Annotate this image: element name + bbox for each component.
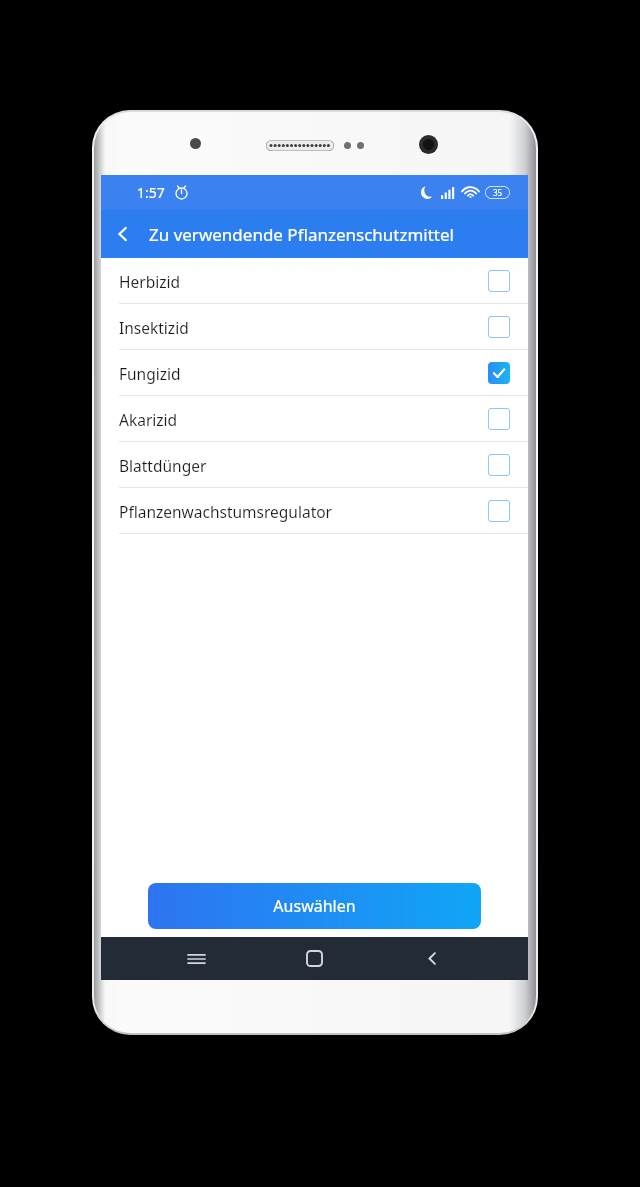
button[interactable]: Herbizid xyxy=(101,258,528,304)
button[interactable]: Home xyxy=(292,937,336,980)
button[interactable]: Akarizid xyxy=(101,396,528,442)
staticText: Herbizid xyxy=(119,271,180,292)
button[interactable]: Back xyxy=(410,937,454,980)
button[interactable]: Auswählen xyxy=(148,883,481,929)
staticText: 35 xyxy=(493,187,503,198)
staticText: Blattdünger xyxy=(119,455,207,476)
button[interactable]: Fungizid xyxy=(101,350,528,396)
button[interactable]: Insektizid xyxy=(101,304,528,350)
staticText: 1:57 xyxy=(137,183,165,202)
staticText: Akarizid xyxy=(119,409,178,430)
staticText: Fungizid xyxy=(119,363,181,384)
staticText: Pflanzenwachstumsregulator xyxy=(119,501,333,522)
button[interactable]: Blattdünger xyxy=(101,442,528,488)
staticText: Zu verwendende Pflanzenschutzmittel xyxy=(149,223,454,246)
button[interactable]: Pflanzenwachstumsregulator xyxy=(101,488,528,534)
button[interactable]: Back xyxy=(101,212,145,256)
staticText: Insektizid xyxy=(119,317,189,338)
button[interactable]: Menu xyxy=(174,937,218,980)
staticText: Auswählen xyxy=(273,895,356,917)
